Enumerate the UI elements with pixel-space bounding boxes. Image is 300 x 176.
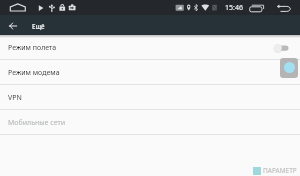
- staticText: Ещё: [32, 22, 45, 30]
- button[interactable]: VPN: [0, 85, 300, 110]
- staticText: Мобильные сети: [8, 118, 66, 128]
- staticText: ПАРАМЕТР: [263, 166, 297, 175]
- button[interactable]: Режим полета: [0, 35, 300, 60]
- staticText: 15:46: [225, 3, 243, 13]
- staticText: Режим модема: [8, 68, 60, 78]
- button[interactable]: Мобильные сети: [0, 110, 300, 135]
- staticText: Режим полета: [8, 43, 57, 53]
- button[interactable]: Режим модема: [0, 60, 300, 85]
- button[interactable]: Tethering toggle: [280, 58, 298, 78]
- staticText: VPN: [8, 93, 22, 103]
- button[interactable]: Airplane mode toggle: [272, 39, 296, 57]
- button[interactable]: Back: [3, 15, 23, 35]
